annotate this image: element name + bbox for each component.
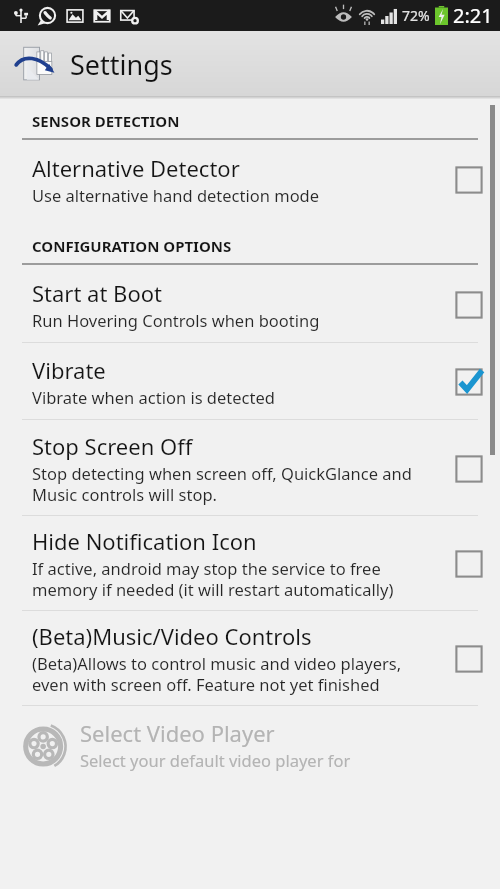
staticText: Vibrate — [32, 355, 106, 385]
staticText: Use alternative hand detection mode — [32, 184, 320, 206]
staticText: Stop Screen Off — [32, 431, 193, 461]
button[interactable]: Unchecked — [454, 549, 484, 579]
button[interactable]: Hide Notification Icon — [0, 516, 500, 610]
staticText: Select your default video player for — [80, 749, 351, 771]
staticText: SENSOR DETECTION — [32, 111, 180, 131]
button[interactable]: Unchecked — [454, 644, 484, 674]
button[interactable]: Unchecked — [454, 290, 484, 320]
staticText: Run Hovering Controls when booting — [32, 309, 320, 331]
other: App icon — [14, 42, 58, 86]
button[interactable]: Alternative Detector — [0, 140, 500, 216]
staticText: If active, android may stop the service … — [32, 557, 442, 601]
staticText: Settings — [70, 46, 173, 83]
staticText: Hide Notification Icon — [32, 526, 257, 556]
staticText: Select Video Player — [80, 718, 275, 748]
staticText: 2:21 — [453, 2, 493, 29]
button[interactable]: Checked — [454, 367, 484, 397]
staticText: (Beta)Music/Video Controls — [32, 621, 312, 651]
staticText: Alternative Detector — [32, 153, 240, 183]
button[interactable]: Stop Screen Off — [0, 420, 500, 515]
staticText: 72% — [402, 6, 430, 25]
button[interactable]: Start at Boot — [0, 265, 500, 342]
staticText: Vibrate when action is detected — [32, 386, 275, 408]
button[interactable]: Unchecked — [454, 454, 484, 484]
button[interactable]: Unchecked — [454, 165, 484, 195]
staticText: (Beta)Allows to control music and video … — [32, 652, 442, 696]
button[interactable]: (Beta)Music/Video Controls — [0, 611, 500, 705]
button[interactable]: Vibrate — [0, 343, 500, 419]
staticText: Start at Boot — [32, 278, 162, 308]
staticText: Stop detecting when screen off, QuickGla… — [32, 462, 442, 506]
staticText: CONFIGURATION OPTIONS — [32, 236, 232, 256]
button[interactable]: Select Video Player — [0, 706, 500, 771]
